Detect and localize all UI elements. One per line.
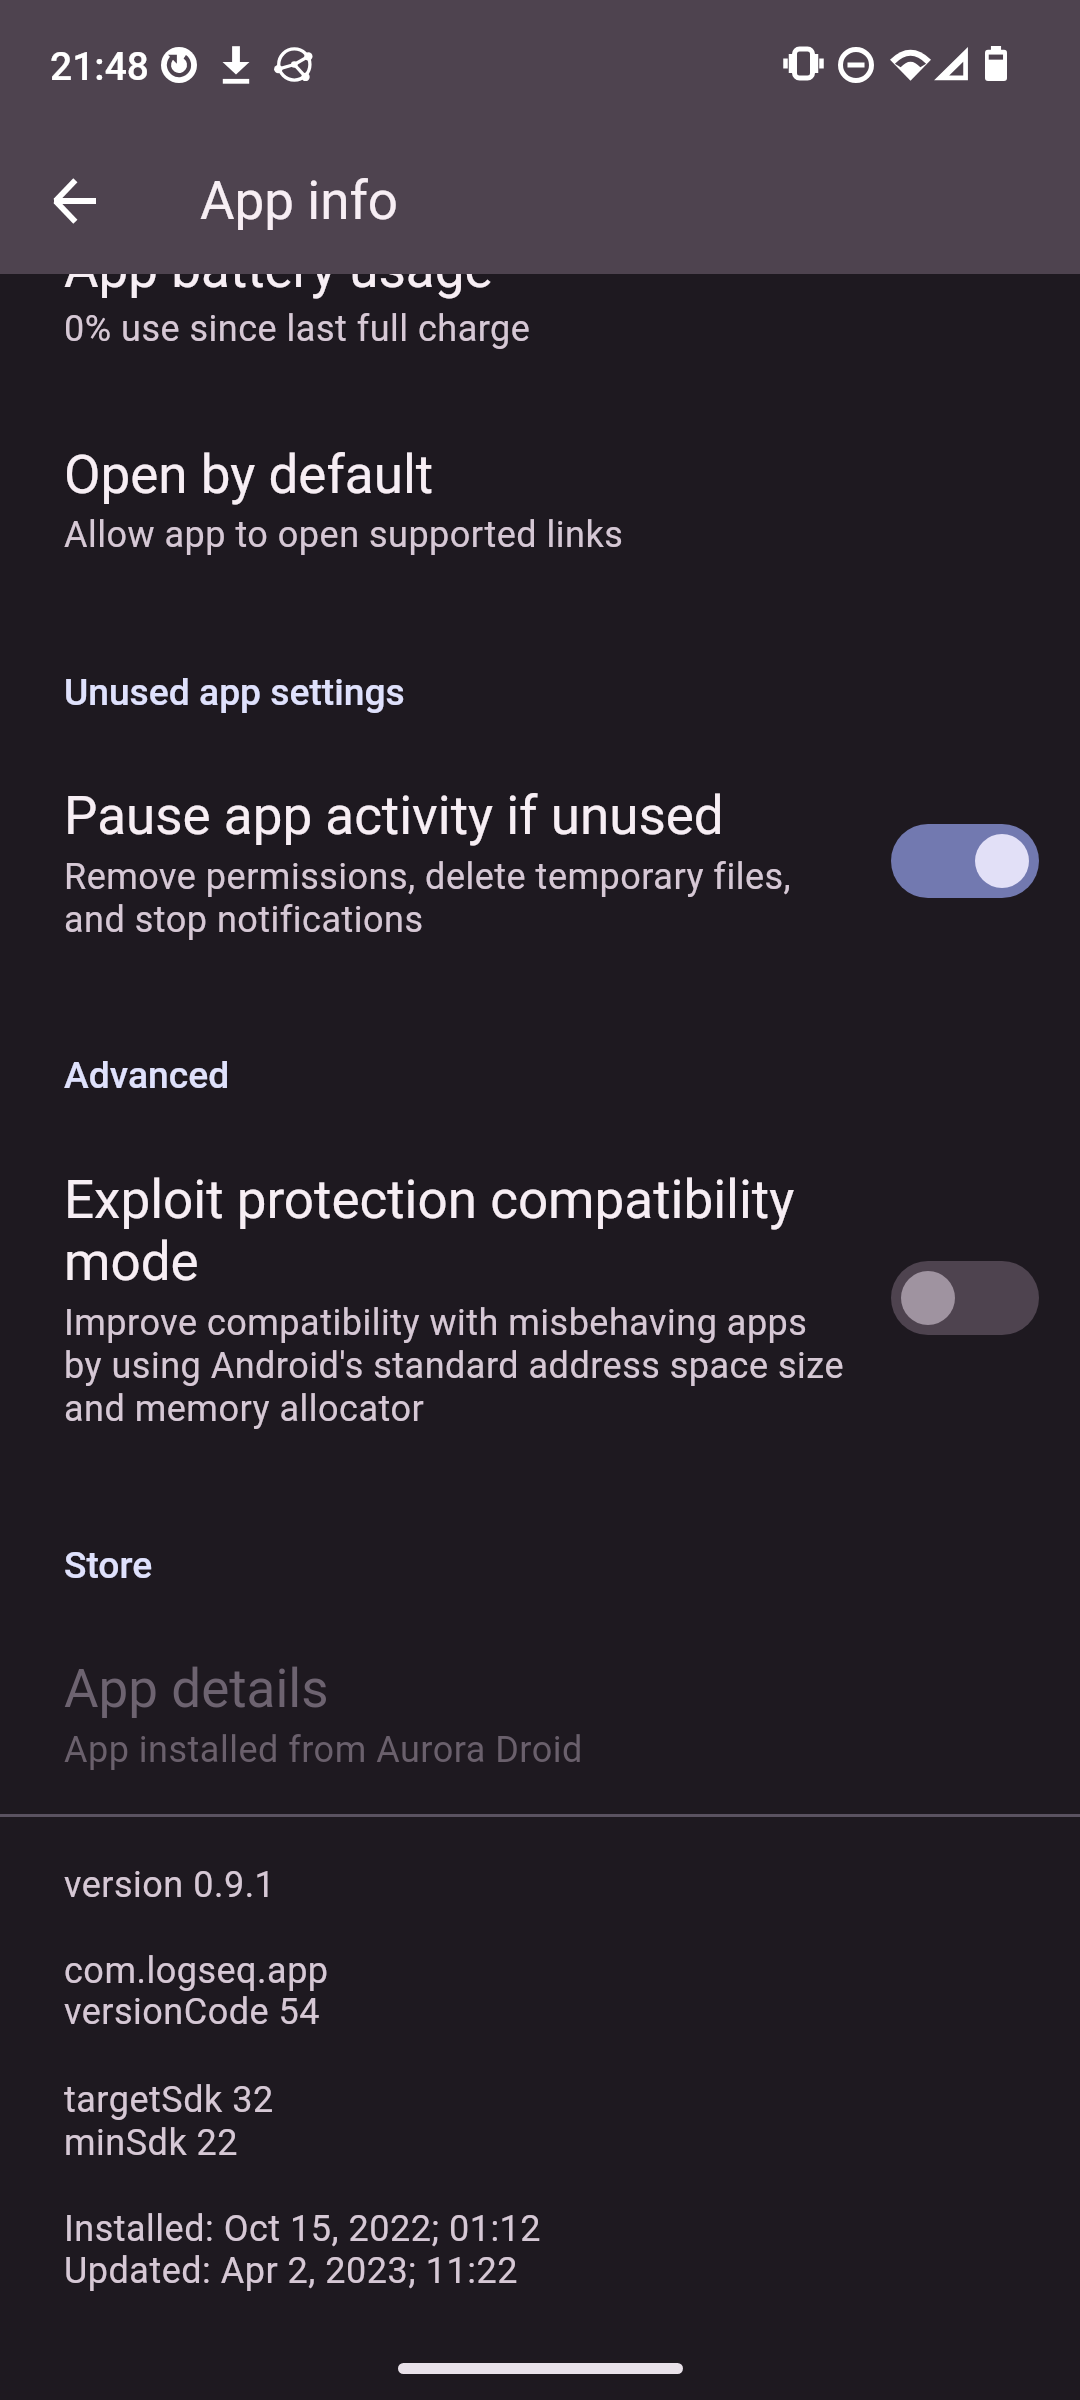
staticText: Pause app activity if unused [64, 785, 724, 847]
staticText: App battery usage [64, 238, 493, 300]
button[interactable]: Switch on [891, 824, 1039, 898]
staticText: Advanced [64, 1053, 230, 1097]
staticText: Unused app settings [64, 670, 405, 714]
button[interactable]: App details [0, 1632, 1080, 1787]
staticText: App installed from Aurora Droid [64, 1729, 583, 1771]
button[interactable]: Exploit protection compatibility mode [0, 1146, 1080, 1446]
staticText: Store [64, 1543, 153, 1587]
staticText: Installed: Oct 15, 2022; 01:12 Updated: … [64, 2208, 542, 2291]
staticText: com.logseq.app versionCode 54 [64, 1950, 329, 2033]
staticText: Exploit protection compatibility mode [64, 1169, 795, 1293]
staticText: App details [64, 1658, 329, 1720]
staticText: 0% use since last full charge [64, 308, 531, 350]
staticText: Remove permissions, delete temporary fil… [64, 856, 792, 941]
button[interactable]: App battery usage [0, 215, 1080, 370]
staticText: App info [200, 170, 399, 232]
staticText: Improve compatibility with misbehaving a… [64, 1302, 844, 1430]
staticText: Open by default [64, 444, 434, 506]
staticText: Allow app to open supported links [64, 514, 624, 556]
button[interactable]: Navigate up [18, 145, 130, 257]
staticText: targetSdk 32 minSdk 22 [64, 2079, 274, 2163]
button[interactable]: Switch off [891, 1261, 1039, 1335]
button[interactable]: Pause app activity if unused [0, 762, 1080, 974]
button[interactable]: Open by default [0, 420, 1080, 575]
staticText: version 0.9.1 [64, 1864, 276, 1906]
staticText: 21:48 [50, 44, 150, 90]
